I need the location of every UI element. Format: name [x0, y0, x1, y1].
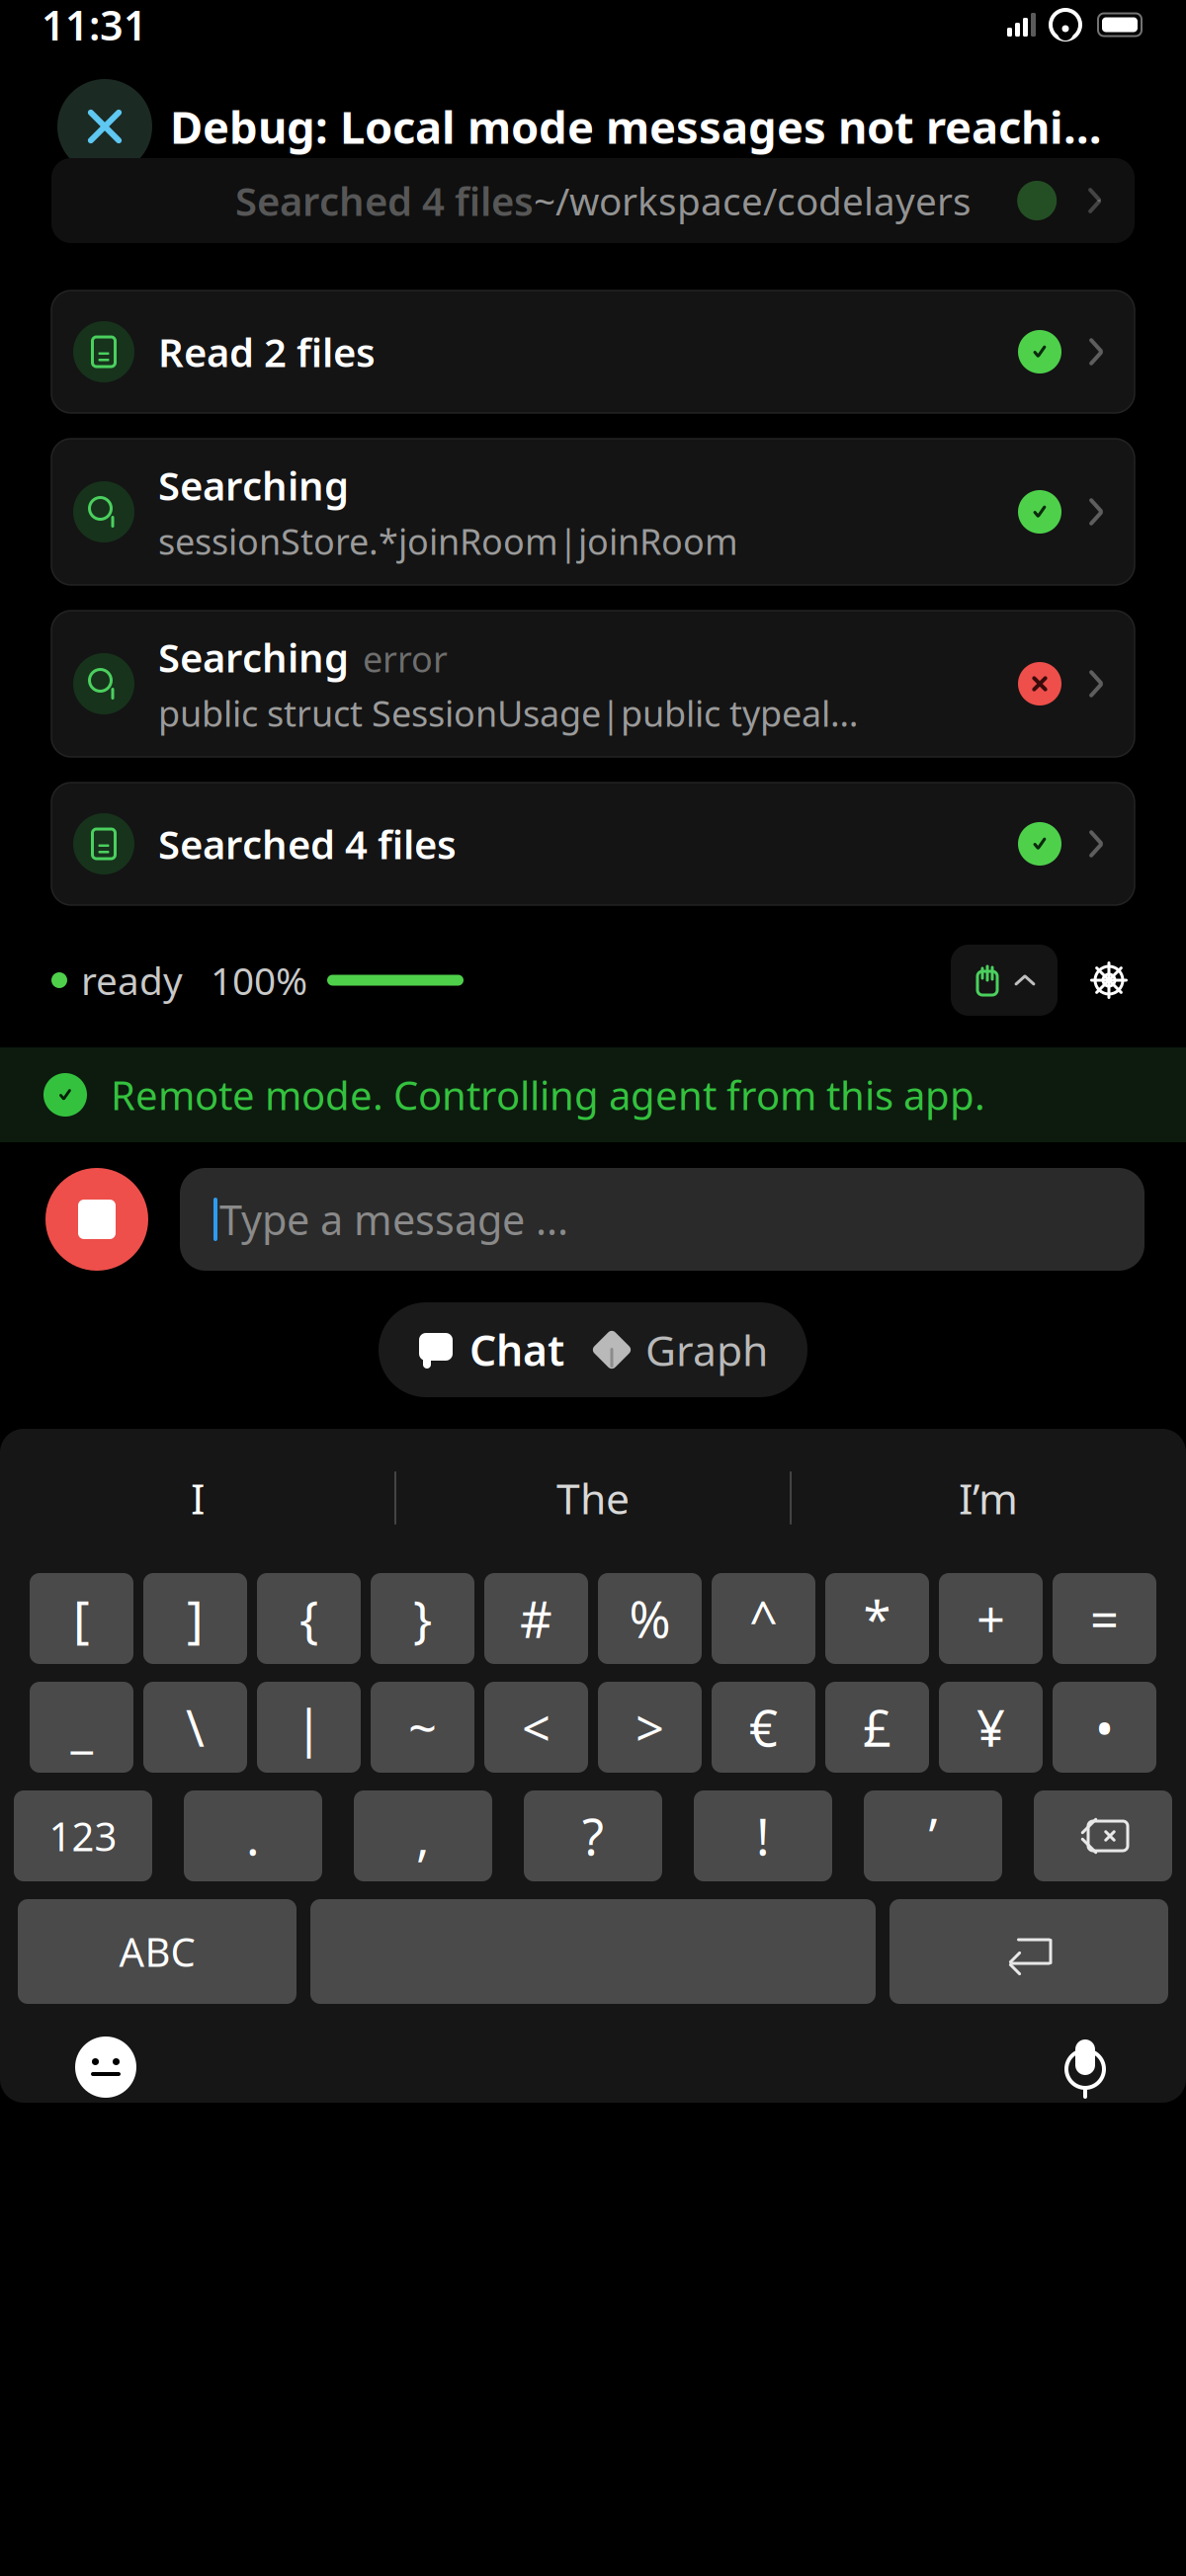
staticText: < — [522, 1694, 551, 1761]
staticText: Searched 4 files — [235, 174, 534, 227]
staticText: Type a message ... — [219, 1192, 568, 1246]
button[interactable]: ¥ — [939, 1682, 1043, 1773]
staticText: ] — [187, 1585, 204, 1652]
staticText: { — [299, 1585, 318, 1652]
staticText: Debug: Local mode messages not reachi… — [170, 97, 1102, 156]
button[interactable]: Searching — [51, 439, 1135, 585]
staticText: Remote mode. Controlling agent from this… — [111, 1069, 985, 1121]
staticText: [ — [73, 1585, 90, 1652]
button[interactable]: Chat — [379, 1302, 594, 1397]
staticText: ¥ — [976, 1694, 1005, 1761]
staticText: * — [863, 1585, 891, 1652]
staticText: 123 — [49, 1810, 117, 1862]
staticText: public struct SessionUsage|public typeal… — [158, 689, 858, 737]
staticText: + — [976, 1585, 1005, 1652]
button[interactable]: 123 — [14, 1790, 152, 1881]
button[interactable]: Return — [889, 1899, 1168, 2004]
staticText: ^ — [749, 1585, 778, 1652]
button[interactable]: # — [484, 1573, 588, 1664]
staticText: ’ — [929, 1803, 937, 1869]
button[interactable]: Graph — [594, 1302, 807, 1397]
button[interactable]: Settings — [1083, 955, 1135, 1006]
button[interactable]: € — [712, 1682, 815, 1773]
staticText: sessionStore.*joinRoom|joinRoom — [158, 517, 738, 565]
staticText: ? — [582, 1803, 604, 1869]
staticText: 11:31 — [42, 0, 147, 52]
button[interactable]: I — [1, 1451, 394, 1545]
button[interactable]: < — [484, 1682, 588, 1773]
button[interactable]: ^ — [712, 1573, 815, 1664]
staticText: Searched 4 files — [158, 818, 457, 870]
staticText: > — [635, 1694, 664, 1761]
button[interactable]: ABC — [18, 1899, 296, 2004]
button[interactable]: Stop — [45, 1168, 148, 1271]
button[interactable]: _ — [30, 1682, 133, 1773]
button[interactable]: > — [598, 1682, 702, 1773]
button[interactable]: . — [184, 1790, 322, 1881]
staticText: # — [520, 1585, 552, 1652]
button[interactable]: • — [1053, 1682, 1156, 1773]
staticText: Graph — [645, 1322, 768, 1378]
staticText: . — [246, 1803, 260, 1869]
staticText: £ — [863, 1694, 891, 1761]
button[interactable]: % — [598, 1573, 702, 1664]
button[interactable]: [ — [30, 1573, 133, 1664]
button[interactable]: Close — [57, 79, 152, 174]
button[interactable]: + — [939, 1573, 1043, 1664]
staticText: Searching — [158, 459, 349, 511]
staticText: Read 2 files — [158, 325, 376, 378]
button[interactable]: ] — [143, 1573, 247, 1664]
staticText: , — [416, 1803, 430, 1869]
staticText: ready — [81, 955, 183, 1005]
staticText: Searching — [158, 631, 349, 683]
staticText: ABC — [119, 1925, 195, 1978]
staticText: } — [413, 1585, 432, 1652]
staticText: error — [363, 635, 448, 682]
button[interactable]: = — [1053, 1573, 1156, 1664]
staticText: 100% — [211, 955, 307, 1005]
staticText: ! — [756, 1803, 770, 1869]
button[interactable]: ! — [694, 1790, 832, 1881]
staticText: I — [191, 1470, 205, 1526]
staticText: Chat — [469, 1322, 564, 1378]
staticText: \ — [186, 1694, 205, 1761]
button[interactable]: } — [371, 1573, 474, 1664]
button[interactable]: ’ — [864, 1790, 1002, 1881]
staticText: € — [749, 1694, 778, 1761]
button[interactable]: \ — [143, 1682, 247, 1773]
staticText: ~ — [408, 1694, 437, 1761]
staticText: _ — [71, 1694, 92, 1761]
staticText: I’m — [959, 1470, 1018, 1526]
button[interactable]: Dictate — [1059, 2032, 1111, 2103]
staticText: | — [295, 1694, 323, 1761]
button[interactable]: Searched 4 files — [51, 783, 1135, 905]
button[interactable]: Delete — [1034, 1790, 1172, 1881]
staticText: • — [1095, 1694, 1114, 1761]
button[interactable]: | — [257, 1682, 361, 1773]
button[interactable]: Space — [310, 1899, 876, 2004]
staticText: = — [1090, 1585, 1119, 1652]
staticText: ~/workspace/codelayers — [534, 175, 972, 226]
button[interactable]: , — [354, 1790, 492, 1881]
button[interactable]: The — [396, 1451, 790, 1545]
button[interactable]: Read 2 files — [51, 291, 1135, 413]
button[interactable]: I’m — [792, 1451, 1185, 1545]
button[interactable]: { — [257, 1573, 361, 1664]
staticText: % — [629, 1585, 671, 1652]
button[interactable]: * — [825, 1573, 929, 1664]
button[interactable]: £ — [825, 1682, 929, 1773]
staticText: The — [556, 1470, 630, 1526]
button[interactable]: Interrupt options — [951, 945, 1058, 1016]
button[interactable]: Searching — [51, 611, 1135, 757]
button[interactable]: ? — [524, 1790, 662, 1881]
button[interactable]: ~ — [371, 1682, 474, 1773]
button[interactable]: Emoji — [75, 2036, 136, 2098]
